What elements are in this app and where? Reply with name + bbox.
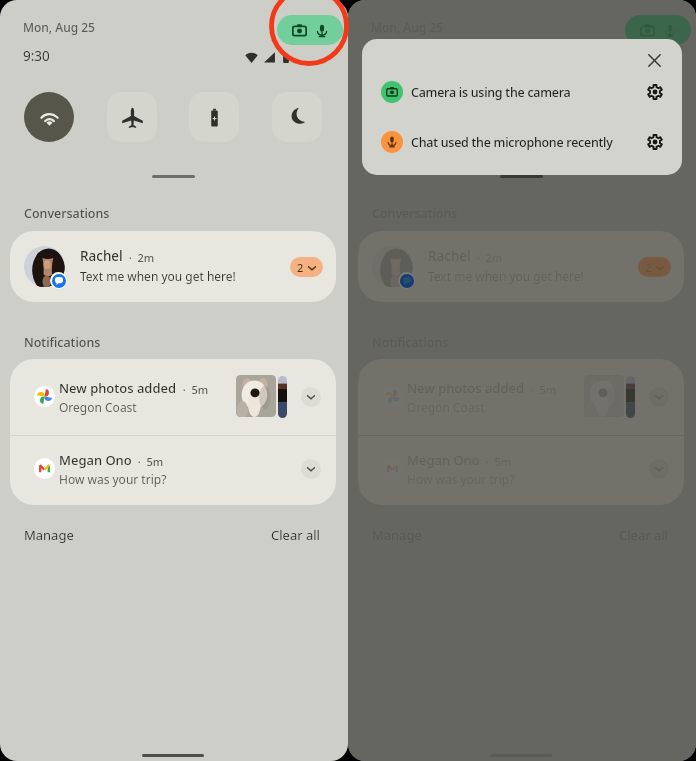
staticText: Rachel [80, 247, 123, 265]
staticText: How was your trip? [407, 471, 515, 487]
staticText: 2 [297, 260, 304, 275]
button[interactable]: Manage [24, 526, 74, 544]
staticText: · 2m [471, 250, 503, 265]
button[interactable]: Expand [301, 459, 321, 479]
staticText: · 5m [177, 382, 209, 397]
button[interactable]: Rachel [10, 231, 336, 302]
button[interactable]: Manage [372, 526, 422, 544]
staticText: Chat used the microphone recently [411, 134, 613, 151]
staticText: How was your trip? [59, 471, 167, 487]
staticText: New photos added [59, 379, 177, 397]
staticText: 2 [645, 260, 652, 275]
button[interactable]: Expand [301, 387, 321, 407]
button[interactable]: Quick setting [24, 92, 74, 142]
staticText: Text me when you get here! [428, 268, 584, 284]
button[interactable]: Clear all [271, 526, 320, 544]
button[interactable]: Camera and microphone in use [625, 15, 691, 45]
button[interactable]: Quick setting [107, 92, 157, 142]
staticText: Megan Ono [407, 451, 480, 469]
button[interactable]: Quick setting [455, 92, 505, 142]
staticText: · 5m [132, 454, 164, 469]
button[interactable]: Quick setting [372, 92, 422, 142]
button[interactable]: Settings [644, 131, 666, 153]
button[interactable]: Quick setting [189, 92, 239, 142]
staticText: Camera is using the camera [411, 84, 571, 101]
staticText: Megan Ono [59, 451, 132, 469]
staticText: Rachel [428, 247, 471, 265]
staticText: Text me when you get here! [80, 268, 236, 284]
staticText: · 5m [480, 454, 512, 469]
button[interactable]: New photos added [358, 359, 684, 435]
staticText: Oregon Coast [59, 399, 137, 415]
button[interactable]: Chat used the microphone recently [362, 131, 682, 153]
button[interactable]: New photos added [10, 359, 336, 435]
staticText: Notifications [372, 334, 449, 351]
staticText: Oregon Coast [407, 399, 485, 415]
button[interactable]: Camera is using the camera [362, 81, 682, 103]
button[interactable]: Quick setting [620, 92, 670, 142]
button[interactable]: Expand [649, 387, 669, 407]
button[interactable]: Settings [644, 81, 666, 103]
button[interactable]: Camera and microphone in use [277, 15, 343, 45]
staticText: 9:30 [23, 47, 50, 65]
staticText: Notifications [24, 334, 101, 351]
button[interactable]: Rachel [358, 231, 684, 302]
staticText: Conversations [372, 205, 458, 222]
button[interactable]: 2 [638, 257, 671, 277]
button[interactable]: Megan Ono [10, 436, 336, 505]
button[interactable]: Close [640, 46, 668, 74]
staticText: · 5m [525, 382, 557, 397]
staticText: Mon, Aug 25 [371, 19, 443, 35]
button[interactable]: Quick setting [537, 92, 587, 142]
button[interactable]: 2 [290, 257, 323, 277]
staticText: · 2m [123, 250, 155, 265]
staticText: Mon, Aug 25 [23, 19, 95, 35]
button[interactable]: Expand [649, 459, 669, 479]
button[interactable]: Clear all [619, 526, 668, 544]
staticText: Conversations [24, 205, 110, 222]
button[interactable]: Quick setting [272, 92, 322, 142]
staticText: New photos added [407, 379, 525, 397]
